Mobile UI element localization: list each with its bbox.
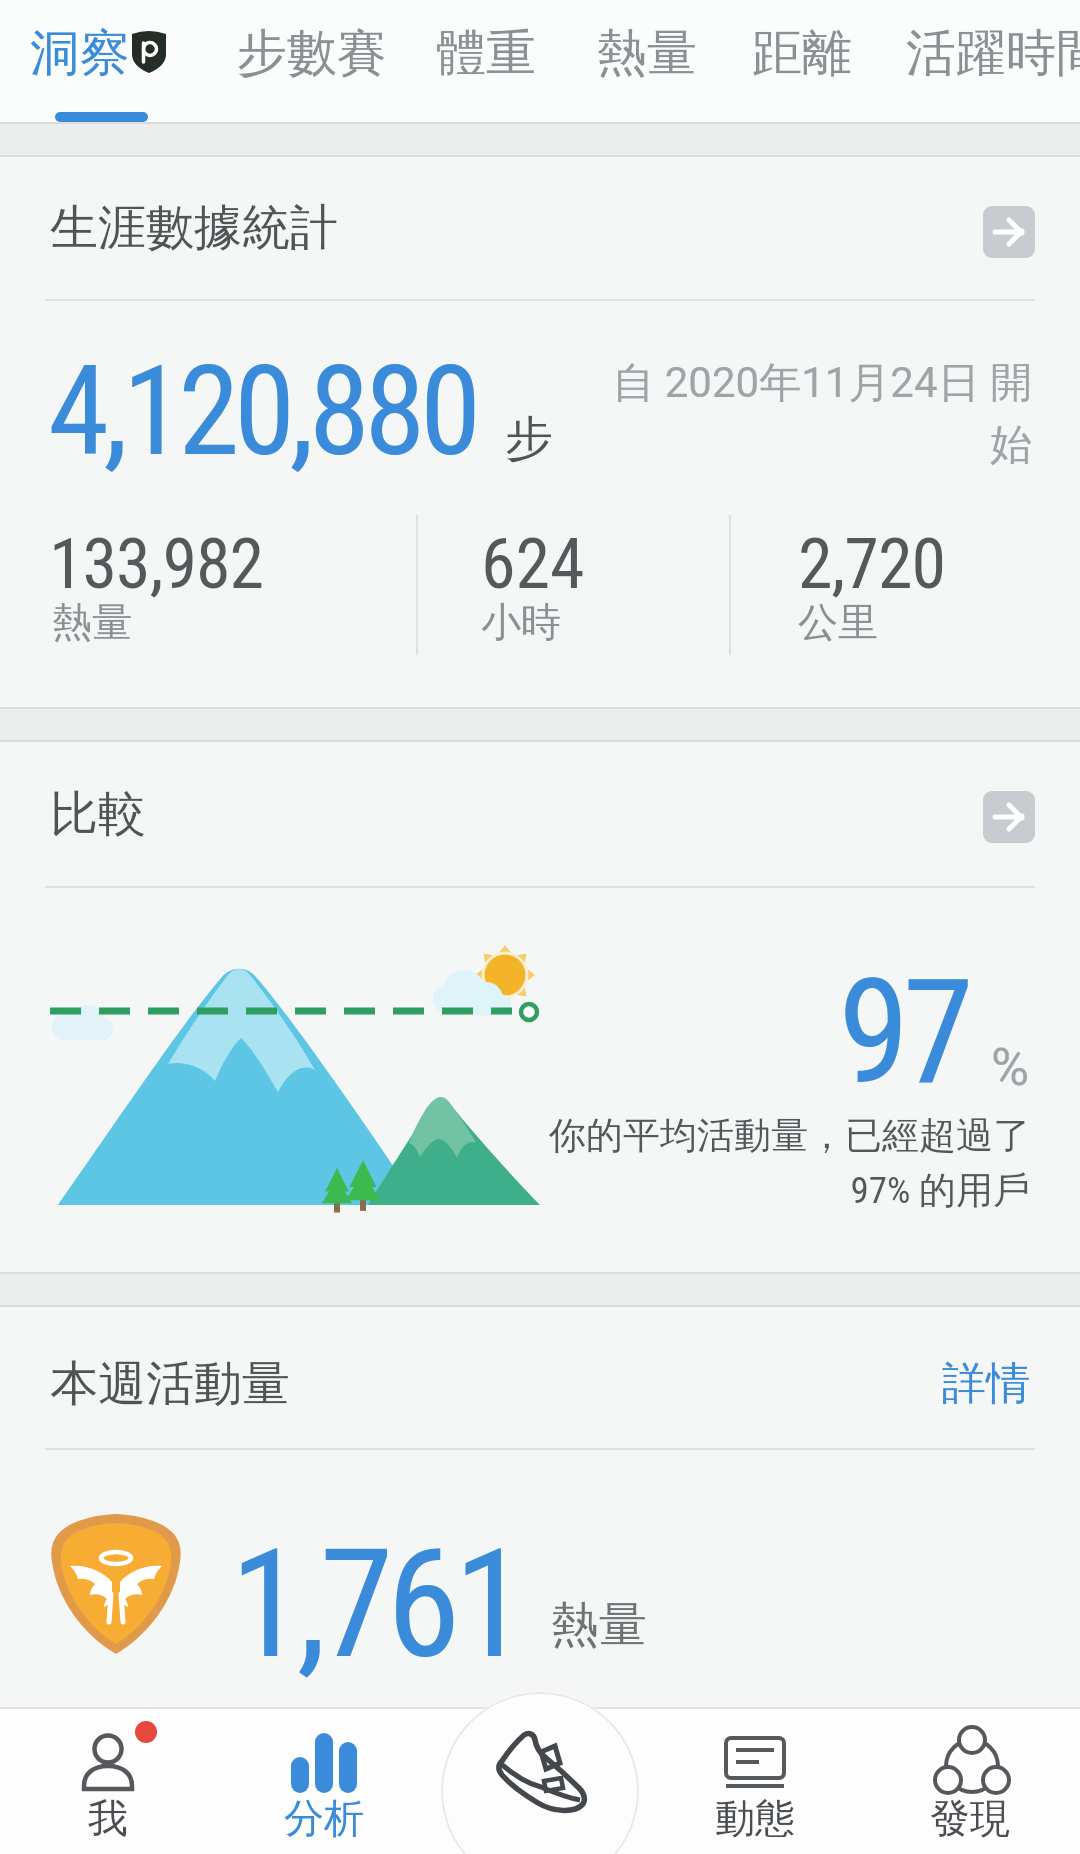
staticText: 洞察 [30,22,130,85]
staticText: 你的平均活動量，已經超過了 [390,1112,1030,1159]
button[interactable]: 詳情 [0,0,88,55]
staticText: 97 [838,947,968,1117]
staticText: 距離 [752,22,852,85]
staticText: 步數賽 [237,22,387,85]
button[interactable]: 活躍時間 [906,0,1080,122]
button[interactable]: 步數賽 [237,0,387,122]
staticText: 我 [88,1793,128,1843]
staticText: 1,761 [230,1517,521,1693]
staticText: % [991,1037,1030,1098]
staticText: 133,982 [49,523,264,605]
button[interactable]: 熱量 [597,0,697,122]
button[interactable] [922,1712,1022,1852]
staticText: 自 2020年11月24日 開 始 [592,357,1032,472]
staticText: 生涯數據統計 [50,198,338,258]
button[interactable] [705,1712,805,1852]
staticText: 步 [505,409,553,469]
button[interactable]: 體重 [436,0,536,122]
staticText: 97% 的用戶 [390,1167,1030,1214]
staticText: 動態 [715,1793,795,1843]
button[interactable]: 距離 [752,0,852,122]
staticText: 活躍時間 [906,22,1080,85]
button[interactable] [441,1692,639,1854]
staticText: 比較 [50,784,146,844]
staticText: 本週活動量 [50,1354,290,1414]
staticText: 公里 [798,597,878,647]
button[interactable]: 洞察 [20,0,170,122]
staticText: 發現 [930,1793,1010,1843]
staticText: 624 [481,523,585,605]
staticText: 體重 [436,22,536,85]
button[interactable] [60,1712,160,1852]
button[interactable] [274,1712,374,1852]
staticText: 分析 [284,1793,364,1843]
staticText: 4,120,880 [48,339,476,484]
button[interactable] [983,791,1035,843]
staticText: 小時 [481,597,561,647]
staticText: 熱量 [551,1595,647,1655]
button[interactable] [983,206,1035,258]
staticText: 熱量 [52,597,132,647]
staticText: 熱量 [597,22,697,85]
staticText: 2,720 [798,523,945,605]
